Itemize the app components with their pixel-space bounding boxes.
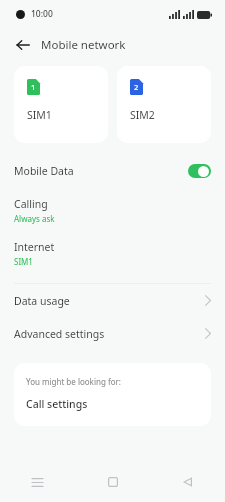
button[interactable]: Advanced settings — [0, 317, 225, 350]
button[interactable]: Back — [150, 462, 225, 502]
staticText: SIM2 — [130, 108, 155, 122]
staticText: Internet — [14, 240, 55, 254]
staticText: 2 — [134, 82, 139, 92]
button[interactable]: Home — [75, 462, 150, 502]
other: Mobile data toggle — [188, 164, 211, 178]
button[interactable]: 1 — [14, 66, 108, 143]
staticText: Mobile Data — [14, 164, 74, 178]
button[interactable]: You might be looking for: — [14, 363, 211, 426]
staticText: SIM1 — [14, 256, 33, 267]
staticText: Advanced settings — [14, 327, 105, 341]
staticText: SIM1 — [27, 108, 52, 122]
button[interactable]: 2 — [117, 66, 211, 143]
staticText: Data usage — [14, 294, 70, 308]
staticText: Call settings — [26, 397, 88, 411]
button[interactable]: Mobile Data — [0, 153, 225, 189]
button[interactable]: Calling — [0, 189, 225, 232]
staticText: You might be looking for: — [26, 376, 121, 387]
staticText: 10:00 — [31, 8, 53, 20]
staticText: Always ask — [14, 213, 55, 224]
button[interactable]: Back — [10, 32, 36, 58]
staticText: Mobile network — [41, 37, 126, 53]
staticText: Calling — [14, 197, 48, 211]
staticText: 1 — [31, 82, 36, 92]
button[interactable]: Data usage — [0, 284, 225, 317]
button[interactable]: Recent apps — [0, 462, 75, 502]
button[interactable]: Internet — [0, 232, 225, 275]
